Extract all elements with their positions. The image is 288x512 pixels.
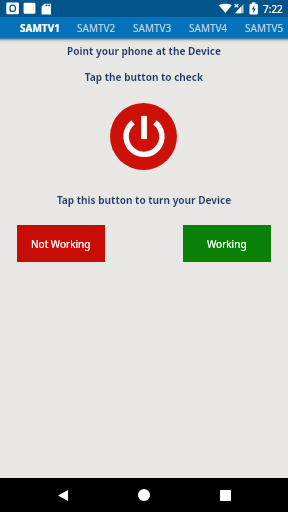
button[interactable]: SAMTV3 — [124, 17, 180, 38]
staticText: SAMTV4 — [189, 21, 228, 35]
staticText: SAMTV3 — [133, 21, 172, 35]
staticText: SAMTV2 — [77, 21, 116, 35]
button[interactable]: SAMTV2 — [68, 17, 124, 38]
staticText: 7:22 — [263, 2, 283, 16]
staticText: Point your phone at the Device — [0, 44, 288, 58]
button[interactable]: Working — [183, 225, 271, 262]
button[interactable]: SAMTV5 — [236, 17, 288, 38]
staticText: Working — [207, 237, 247, 251]
staticText: Tap the button to check — [0, 70, 288, 84]
button[interactable]: Not Working — [17, 225, 105, 262]
button[interactable]: Power — [110, 103, 177, 170]
button[interactable]: Home — [120, 478, 168, 512]
button[interactable]: Back — [39, 478, 87, 512]
button[interactable]: SAMTV4 — [180, 17, 236, 38]
button[interactable]: Recent apps — [201, 478, 249, 512]
staticText: Tap this button to turn your Device — [0, 193, 288, 207]
staticText: Not Working — [31, 237, 91, 251]
staticText: SAMTV1 — [20, 21, 60, 35]
staticText: SAMTV5 — [245, 21, 284, 35]
button[interactable]: SAMTV1 — [12, 17, 68, 38]
